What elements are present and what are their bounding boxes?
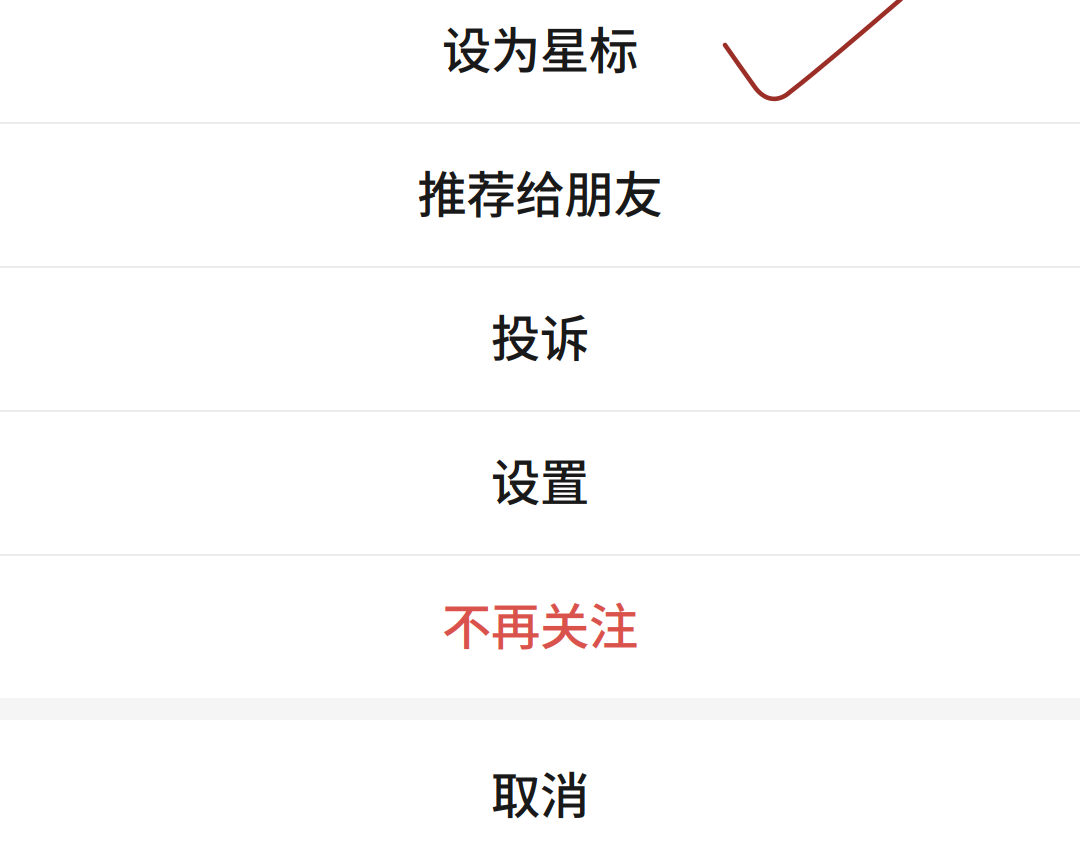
button[interactable]: 设为星标 bbox=[0, 0, 1080, 122]
staticText: 设为星标 bbox=[442, 11, 638, 83]
staticText: 推荐给朋友 bbox=[417, 155, 662, 227]
button[interactable]: 取消 bbox=[0, 720, 1080, 857]
staticText: 设置 bbox=[491, 443, 589, 515]
staticText: 取消 bbox=[491, 756, 589, 828]
button[interactable]: 推荐给朋友 bbox=[0, 124, 1080, 266]
button[interactable]: 投诉 bbox=[0, 268, 1080, 410]
staticText: 投诉 bbox=[491, 299, 589, 371]
staticText: 不再关注 bbox=[442, 587, 638, 659]
button[interactable]: 设置 bbox=[0, 412, 1080, 554]
button[interactable]: 不再关注 bbox=[0, 556, 1080, 698]
